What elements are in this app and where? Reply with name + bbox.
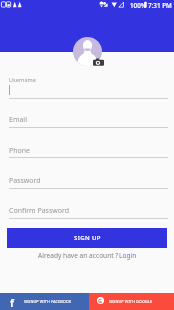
staticText: SIGNUP WITH GOOGLE bbox=[109, 299, 153, 304]
button[interactable]: Change profile photo bbox=[93, 57, 104, 68]
staticText: SIGNUP WITH FACEBOOK bbox=[24, 299, 72, 304]
staticText: Phone bbox=[9, 146, 31, 156]
button[interactable]: Google bbox=[89, 293, 174, 310]
staticText: Username bbox=[9, 76, 36, 83]
staticText: Confirm Password bbox=[9, 206, 70, 216]
button[interactable]: Profile photo bbox=[73, 37, 102, 66]
staticText: 7:31 PM bbox=[148, 1, 172, 10]
button[interactable]: SIGN UP bbox=[7, 228, 167, 248]
staticText: f bbox=[10, 296, 14, 310]
staticText: SIGN UP bbox=[74, 234, 101, 242]
staticText: 100% bbox=[130, 1, 147, 10]
staticText: Password bbox=[9, 176, 41, 186]
staticText: Login bbox=[119, 251, 137, 260]
staticText: Email bbox=[9, 115, 27, 125]
button[interactable]: Login bbox=[119, 251, 137, 260]
button[interactable]: Facebook bbox=[0, 293, 89, 310]
staticText: G bbox=[98, 297, 103, 304]
other: Google bbox=[97, 297, 104, 304]
staticText: Already have an account ? bbox=[38, 251, 119, 260]
